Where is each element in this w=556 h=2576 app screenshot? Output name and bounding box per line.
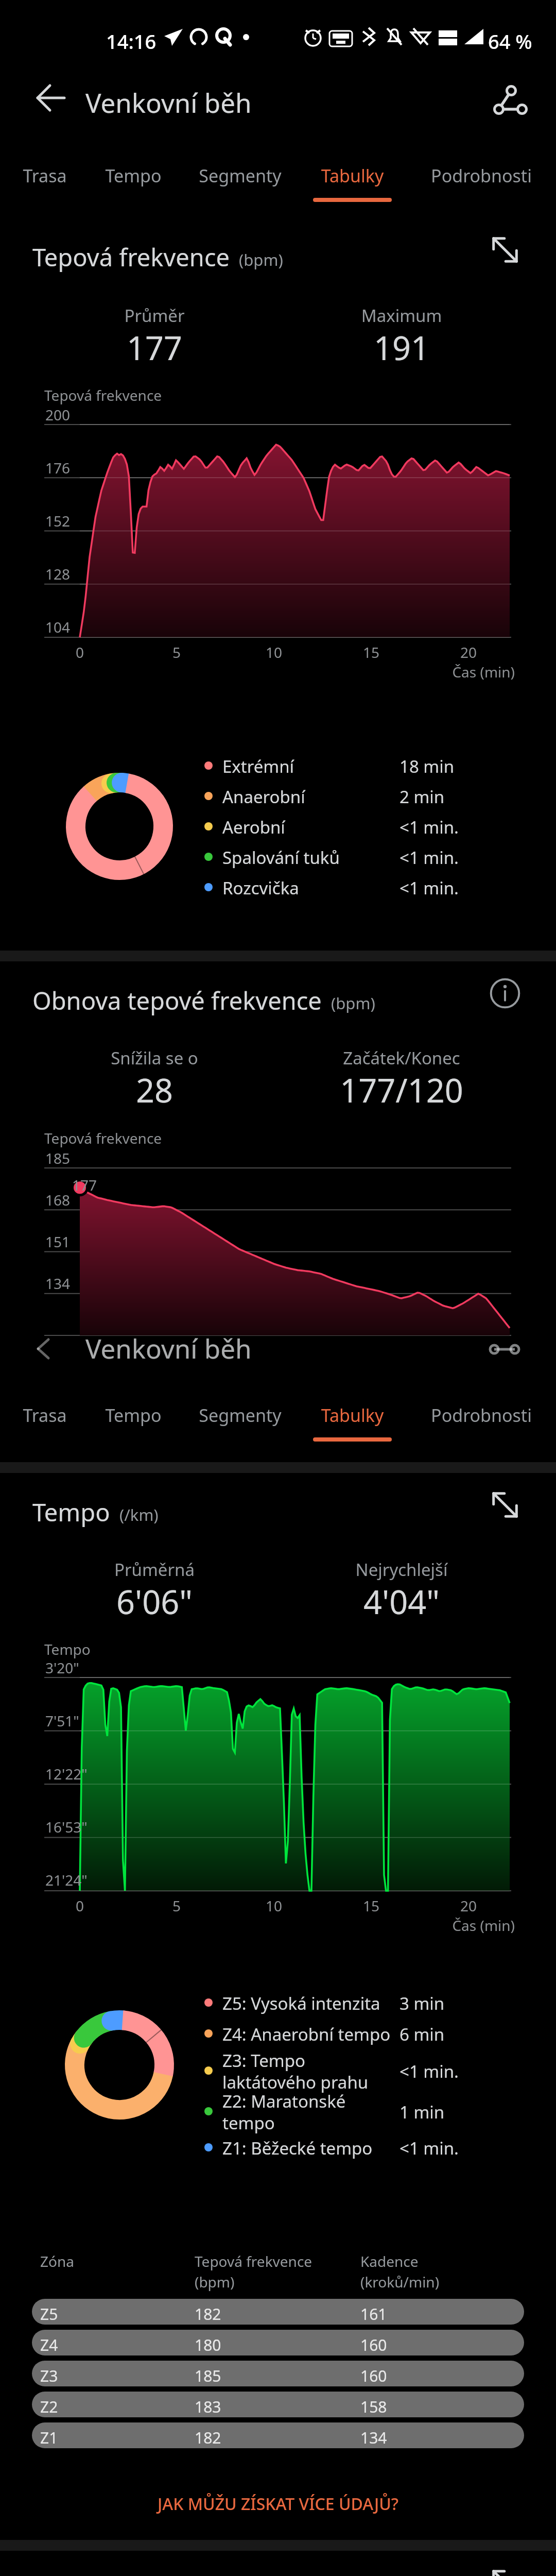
staticText: Z4 bbox=[40, 2334, 58, 2355]
staticText: Průměr bbox=[31, 304, 278, 327]
staticText: 15 bbox=[351, 1896, 392, 1916]
staticText: 160 bbox=[360, 2365, 387, 2386]
staticText: Kadence (kroků/min) bbox=[360, 2251, 440, 2292]
staticText: Tepová frekvence (bpm) bbox=[195, 2251, 312, 2292]
staticText: Podrobnosti bbox=[402, 1403, 556, 1427]
staticText: 151 bbox=[45, 1232, 71, 1251]
staticText: Z4: Anaerobní tempo bbox=[222, 2023, 391, 2046]
staticText: Tabulky bbox=[300, 164, 405, 188]
staticText: Začátek/Konec bbox=[278, 1046, 525, 1070]
staticText: 161 bbox=[360, 2303, 387, 2325]
staticText: Tempo bbox=[44, 1639, 91, 1659]
staticText: Tepová frekvence bbox=[44, 385, 162, 405]
button[interactable]: Expand chart bbox=[480, 232, 530, 267]
button[interactable]: Trasa bbox=[6, 147, 83, 202]
staticText: <1 min. bbox=[399, 846, 459, 869]
staticText: 16'53" bbox=[45, 1817, 88, 1837]
staticText: Z1 bbox=[40, 2427, 58, 2448]
staticText: <1 min. bbox=[399, 816, 459, 839]
staticText: Tepová frekvence bbox=[44, 1128, 162, 1148]
staticText: 104 bbox=[45, 617, 71, 637]
staticText: 1 min bbox=[399, 2100, 445, 2124]
staticText: 185 bbox=[195, 2365, 221, 2386]
staticText: (bpm) bbox=[239, 249, 283, 270]
staticText: Z5 bbox=[40, 2303, 58, 2325]
staticText: 128 bbox=[45, 564, 71, 584]
staticText: 18 min bbox=[399, 755, 455, 778]
button[interactable]: Z3 bbox=[32, 2361, 524, 2386]
staticText: 191 bbox=[278, 326, 525, 370]
staticText: 177 bbox=[31, 326, 278, 370]
staticText: 5 bbox=[156, 1896, 197, 1916]
staticText: 20 bbox=[448, 642, 489, 662]
button[interactable]: Tabulky bbox=[300, 1386, 405, 1442]
staticText: 158 bbox=[360, 2396, 387, 2417]
staticText: (/km) bbox=[119, 1504, 159, 1526]
staticText: 168 bbox=[45, 1190, 71, 1210]
staticText: Podrobnosti bbox=[402, 164, 556, 188]
staticText: 152 bbox=[45, 511, 71, 531]
button[interactable]: Segmenty bbox=[181, 1386, 299, 1442]
staticText: Segmenty bbox=[181, 164, 299, 188]
staticText: Rozcvička bbox=[222, 876, 299, 900]
staticText: 64 % bbox=[488, 28, 532, 55]
button[interactable]: Segmenty bbox=[181, 147, 299, 202]
staticText: 3'20" bbox=[45, 1658, 79, 1677]
staticText: <1 min. bbox=[399, 2060, 459, 2083]
staticText: 177 bbox=[72, 1175, 97, 1195]
staticText: 182 bbox=[195, 2303, 221, 2325]
staticText: Maximum bbox=[278, 304, 525, 327]
staticText: 14:16 bbox=[106, 28, 157, 55]
staticText: Anaerobní bbox=[222, 785, 305, 808]
staticText: Čas (min) bbox=[0, 1916, 515, 1935]
staticText: Z1: Běžecké tempo bbox=[222, 2137, 373, 2160]
staticText: Aerobní bbox=[222, 816, 285, 839]
button[interactable]: Tabulky bbox=[300, 147, 405, 202]
staticText: 177/120 bbox=[278, 1068, 525, 1112]
staticText: 5 bbox=[156, 642, 197, 662]
staticText: 2 min bbox=[399, 785, 445, 808]
button[interactable]: Podrobnosti bbox=[402, 1386, 556, 1442]
button[interactable]: Z2 bbox=[32, 2392, 524, 2417]
button[interactable]: Trasa bbox=[6, 1386, 83, 1442]
staticText: 6'06" bbox=[31, 1580, 278, 1624]
staticText: 0 bbox=[59, 642, 100, 662]
staticText: (bpm) bbox=[331, 992, 375, 1014]
staticText: 10 bbox=[253, 642, 294, 662]
button[interactable]: Expand chart bbox=[480, 1487, 530, 1522]
staticText: Tempo bbox=[32, 1496, 110, 1529]
button[interactable]: Z5 bbox=[32, 2299, 524, 2325]
staticText: Segmenty bbox=[181, 1403, 299, 1427]
staticText: 176 bbox=[45, 458, 71, 478]
staticText: Extrémní bbox=[222, 755, 294, 778]
staticText: Obnova tepové frekvence bbox=[32, 984, 322, 1017]
staticText: 15 bbox=[351, 642, 392, 662]
staticText: Tempo bbox=[85, 164, 182, 188]
button[interactable]: Tempo bbox=[85, 147, 182, 202]
staticText: 20 bbox=[448, 1896, 489, 1916]
button[interactable]: JAK MŮŽU ZÍSKAT VÍCE ÚDAJŮ? bbox=[0, 2493, 556, 2515]
staticText: 160 bbox=[360, 2334, 387, 2355]
button[interactable]: Share bbox=[477, 71, 533, 128]
staticText: Trasa bbox=[6, 164, 83, 188]
staticText: Z2 bbox=[40, 2396, 58, 2417]
button[interactable]: Information bbox=[480, 976, 530, 1011]
button[interactable]: Z1 bbox=[32, 2422, 524, 2448]
button[interactable]: Podrobnosti bbox=[402, 147, 556, 202]
button[interactable]: Z4 bbox=[32, 2330, 524, 2355]
staticText: Nejrychlejší bbox=[278, 1558, 525, 1581]
staticText: <1 min. bbox=[399, 876, 459, 900]
staticText: Z5: Vysoká intenzita bbox=[222, 1992, 380, 2015]
button[interactable]: Tempo bbox=[85, 1386, 182, 1442]
staticText: Venkovní běh bbox=[85, 84, 252, 120]
staticText: 28 bbox=[31, 1068, 278, 1112]
button[interactable]: Back bbox=[26, 74, 76, 124]
button[interactable]: Expand chart bbox=[480, 2565, 530, 2576]
staticText: Zóna bbox=[40, 2251, 74, 2271]
staticText: 10 bbox=[253, 1896, 294, 1916]
staticText: Snížila se o bbox=[31, 1046, 278, 1070]
staticText: 134 bbox=[360, 2427, 387, 2448]
staticText: Trasa bbox=[6, 1403, 83, 1427]
staticText: 180 bbox=[195, 2334, 221, 2355]
